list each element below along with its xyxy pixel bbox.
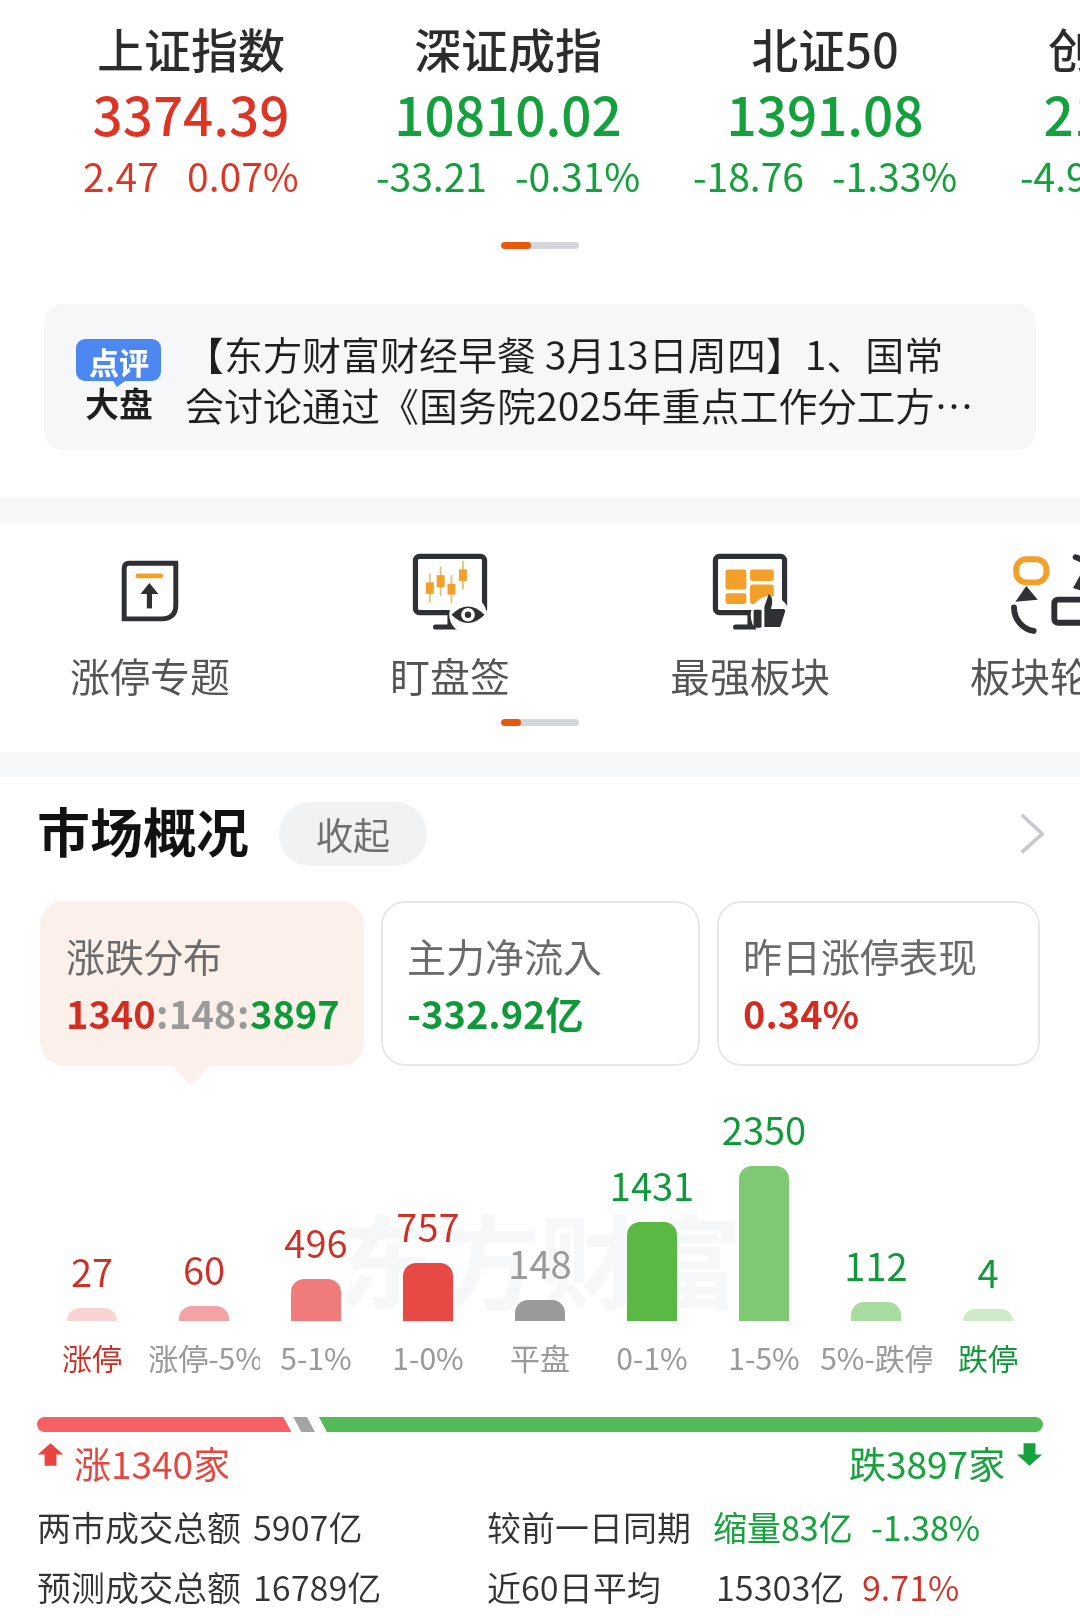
button[interactable]: 昨日涨停表现 (717, 901, 1040, 1066)
staticText: 最强板块 (600, 646, 900, 704)
staticText: 10810.02 (350, 75, 666, 152)
staticText: 5-1% (260, 1335, 372, 1378)
staticText: 点评 (89, 339, 149, 381)
staticText: : (237, 985, 250, 1040)
staticText: 15303亿 (716, 1562, 845, 1611)
staticText: 深证成指 (350, 13, 666, 81)
button[interactable]: 最强板块 (600, 544, 900, 744)
staticText: 148 (169, 985, 237, 1040)
button[interactable]: 涨跌分布 (40, 901, 364, 1066)
staticText: 较前一日同期 (487, 1502, 691, 1551)
staticText: 北证50 (667, 13, 983, 81)
staticText: 涨停专题 (0, 646, 300, 704)
button[interactable]: 展开更多 (1000, 800, 1064, 864)
button[interactable]: 主力净流入 (381, 901, 700, 1066)
staticText: 板块轮动 (900, 646, 1080, 704)
button[interactable]: 上证指数 (33, 10, 349, 220)
staticText: 3897 (250, 985, 340, 1040)
staticText: 主力净流入 (407, 927, 603, 983)
staticText: : (156, 985, 169, 1040)
staticText: 1-0% (372, 1335, 484, 1378)
staticText: -0.31% (515, 147, 641, 203)
staticText: 收起 (316, 807, 390, 861)
staticText: 9.71% (862, 1562, 960, 1611)
button[interactable]: 北证50 (667, 10, 983, 220)
staticText: -1.33% (832, 147, 958, 203)
staticText: 涨1340家 (74, 1436, 231, 1490)
staticText: 会讨论通过《国务院2025年重点工作分工方… (185, 376, 974, 432)
staticText: -33.21 (376, 147, 487, 203)
staticText: 大盘 (85, 378, 153, 427)
button[interactable]: 盯盘签 (300, 544, 600, 744)
staticText: 市场概况 (37, 792, 249, 869)
staticText: 2176.34 (984, 75, 1080, 152)
button[interactable]: 收起 (279, 802, 427, 866)
staticText: -1.38% (871, 1502, 981, 1551)
staticText: 涨跌分布 (66, 927, 223, 983)
staticText: -332.92亿 (407, 985, 584, 1040)
staticText: 1340 (66, 985, 156, 1040)
button[interactable]: 板块轮动 (900, 544, 1080, 744)
staticText: 涨停 (36, 1335, 148, 1378)
button[interactable]: 点评 (44, 304, 1036, 450)
staticText: 3374.39 (33, 75, 349, 152)
staticText: 27 (36, 1243, 148, 1298)
staticText: 112 (820, 1237, 932, 1292)
staticText: 预测成交总额 (37, 1562, 241, 1611)
staticText: 4 (932, 1244, 1044, 1299)
staticText: 平盘 (484, 1335, 596, 1378)
staticText: 1431 (596, 1157, 708, 1212)
staticText: 0.07% (187, 147, 299, 203)
staticText: 1-5% (708, 1335, 820, 1378)
staticText: -18.76 (693, 147, 804, 203)
staticText: 757 (372, 1198, 484, 1253)
staticText: 496 (260, 1214, 372, 1269)
staticText: 5907亿 (253, 1502, 363, 1551)
staticText: 昨日涨停表现 (743, 927, 978, 983)
staticText: 60 (148, 1241, 260, 1296)
staticText: 盯盘签 (300, 646, 600, 704)
staticText: -4.92 (1020, 147, 1080, 203)
staticText: 16789亿 (253, 1562, 382, 1611)
staticText: 东方财富 (337, 1184, 742, 1330)
staticText: 0.34% (743, 985, 860, 1040)
staticText: 跌3897家 (849, 1436, 1006, 1490)
staticText: 涨停-5% (148, 1335, 260, 1378)
button[interactable]: 深证成指 (350, 10, 666, 220)
staticText: 两市成交总额 (37, 1502, 241, 1551)
staticText: 创业板指 (984, 13, 1080, 81)
staticText: 近60日平均 (487, 1562, 661, 1611)
staticText: 上证指数 (33, 13, 349, 81)
staticText: 2350 (708, 1101, 820, 1156)
staticText: 5%-跌停 (820, 1335, 932, 1378)
staticText: 2.47 (83, 147, 159, 203)
staticText: 148 (484, 1235, 596, 1290)
staticText: 缩量83亿 (713, 1502, 853, 1551)
staticText: 0-1% (596, 1335, 708, 1378)
button[interactable]: 创业板指 (984, 10, 1080, 220)
staticText: 跌停 (932, 1335, 1044, 1378)
staticText: 1391.08 (667, 75, 983, 152)
staticText: 【东方财富财经早餐 3月13日周四】1、国常 (185, 325, 944, 381)
button[interactable]: 涨停专题 (0, 544, 300, 744)
